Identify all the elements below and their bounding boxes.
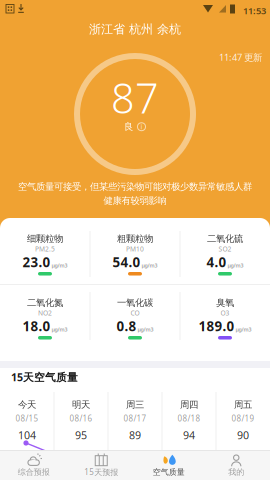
staticText: SO2 [218,244,231,253]
staticText: 95 [75,428,87,442]
staticText: 二氧化硫 [207,233,243,244]
staticText: 08/17 [123,413,146,424]
staticText: 一氧化碳 [117,297,153,308]
staticText: CO [130,308,139,317]
button[interactable]: 今天 [0,392,54,450]
button[interactable]: 明天 [54,392,108,450]
staticText: 4.0 [206,253,226,271]
staticText: 今天 [18,399,36,410]
staticText: 54.0 [112,253,140,271]
staticText: 87 [111,70,159,125]
staticText: 11:47 更新 [219,51,262,63]
staticText: μg/m3 [227,262,243,269]
staticText: 周四 [180,399,198,410]
button[interactable]: 我的 [202,450,270,480]
staticText: 08/16 [69,413,92,424]
staticText: NO2 [38,308,52,317]
staticText: μg/m3 [235,326,251,333]
staticText: PM10 [126,244,144,253]
button[interactable]: 周四 [162,392,216,450]
staticText: 94 [183,428,195,442]
button[interactable]: 浙江省 杭州 余杭 [89,22,181,37]
staticText: 健康有较弱影响 [103,195,166,206]
staticText: 明天 [72,399,90,410]
staticText: μg/m3 [141,262,157,269]
staticText: 15天空气质量 [11,370,78,384]
staticText: 08/18 [177,413,200,424]
staticText: 空气质量 [153,467,185,477]
staticText: i [140,122,142,131]
staticText: 浙江省 杭州 余杭 [89,22,181,37]
staticText: 11:53 [243,4,266,17]
staticText: 90 [237,428,249,442]
button[interactable]: 空气质量 [135,450,202,480]
staticText: 细颗粒物 [27,233,63,244]
staticText: PM2.5 [35,244,55,253]
staticText: μg/m3 [51,262,67,269]
staticText: 臭氧 [216,297,234,308]
staticText: 空气质量可接受，但某些污染物可能对极少数异常敏感人群 [18,181,252,192]
staticText: 15天预报 [84,467,118,477]
button[interactable]: 周三 [108,392,162,450]
staticText: 08/15 [15,413,38,424]
staticText: 23.0 [22,253,50,271]
staticText: 08/19 [231,413,254,424]
staticText: 0.8 [116,317,136,335]
button[interactable]: 15天预报 [67,450,135,480]
staticText: 综合预报 [18,467,50,477]
button[interactable]: 综合预报 [0,450,67,480]
staticText: 周三 [126,399,144,410]
staticText: 二氧化氮 [27,297,63,308]
staticText: μg/m3 [51,326,67,333]
staticText: 18.0 [22,317,50,335]
button[interactable]: 空气质量等级说明 [137,122,146,131]
staticText: 89 [129,428,141,442]
staticText: 189.0 [198,317,234,335]
staticText: 104 [18,428,36,442]
staticText: 我的 [228,467,244,477]
staticText: 粗颗粒物 [117,233,153,244]
staticText: 周五 [234,399,252,410]
staticText: O3 [220,308,229,317]
staticText: 良 [124,121,133,132]
staticText: μg/m3 [137,326,153,333]
button[interactable]: 周五 [216,392,270,450]
